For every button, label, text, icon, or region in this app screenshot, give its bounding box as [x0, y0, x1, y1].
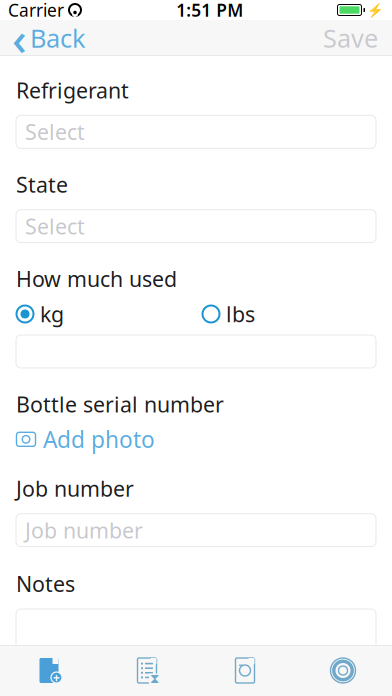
staticText: Job number — [16, 474, 134, 503]
button[interactable]: Settings — [294, 656, 392, 684]
button[interactable]: New record — [0, 655, 98, 685]
staticText: Bottle serial number — [16, 390, 224, 418]
staticText: ⚡ — [367, 2, 384, 18]
staticText: lbs — [226, 300, 255, 328]
button[interactable]: Pending records — [98, 655, 196, 685]
staticText: ‹ — [12, 8, 27, 68]
staticText: 1:51 PM — [176, 0, 243, 21]
staticText: Notes — [16, 570, 75, 598]
button[interactable]: lbs — [202, 303, 255, 325]
button[interactable]: History — [196, 655, 294, 685]
staticText: State — [16, 170, 68, 199]
button[interactable]: Select — [16, 115, 376, 148]
staticText: ⧗ — [150, 672, 159, 685]
staticText: Save — [323, 21, 378, 55]
button[interactable]: Select — [16, 210, 376, 243]
staticText: Back — [30, 21, 86, 55]
staticText: Select — [25, 212, 85, 240]
button[interactable]: Save — [309, 20, 392, 56]
button[interactable]: kg — [16, 303, 64, 325]
staticText: kg — [40, 300, 64, 328]
staticText: Add photo — [43, 424, 155, 454]
staticText: + — [53, 670, 60, 685]
staticText: Refrigerant — [16, 76, 129, 104]
staticText: Carrier — [8, 0, 64, 21]
button[interactable]: Add photo — [16, 427, 155, 451]
staticText: Select — [25, 118, 85, 146]
staticText: Job number — [25, 516, 143, 544]
button[interactable]: ‹ — [0, 20, 98, 56]
staticText: How much used — [16, 265, 177, 293]
